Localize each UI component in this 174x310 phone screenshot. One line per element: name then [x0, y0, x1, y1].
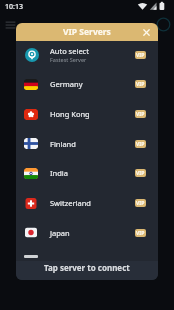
- staticText: VIP: [136, 141, 145, 148]
- staticText: Tap server to connect: [44, 262, 130, 273]
- button[interactable]: Tap server to connect: [16, 261, 158, 280]
- staticText: VIP: [136, 81, 145, 88]
- button[interactable]: Switzerland: [16, 188, 158, 218]
- button[interactable]: [141, 27, 152, 38]
- button[interactable]: Hong Kong: [16, 99, 158, 129]
- button[interactable]: Auto select: [16, 41, 158, 69]
- staticText: VIP: [136, 170, 145, 177]
- staticText: VIP: [136, 52, 145, 59]
- staticText: VIP: [136, 200, 145, 207]
- staticText: Finland: [50, 139, 76, 149]
- staticText: VIP: [136, 230, 145, 237]
- staticText: Germany: [50, 79, 83, 89]
- staticText: Switzerland: [50, 198, 91, 208]
- button[interactable]: Germany: [16, 69, 158, 99]
- staticText: VIP: [136, 111, 145, 118]
- staticText: VIP Servers: [63, 26, 111, 38]
- staticText: Japan: [50, 228, 70, 238]
- staticText: India: [50, 168, 68, 178]
- staticText: Hong Kong: [50, 109, 90, 119]
- button[interactable]: India: [16, 158, 158, 188]
- staticText: Fastest Server: [50, 56, 87, 63]
- staticText: Auto select: [50, 46, 89, 56]
- staticText: 10:13: [5, 2, 23, 12]
- button[interactable]: Japan: [16, 218, 158, 247]
- button[interactable]: Finland: [16, 129, 158, 158]
